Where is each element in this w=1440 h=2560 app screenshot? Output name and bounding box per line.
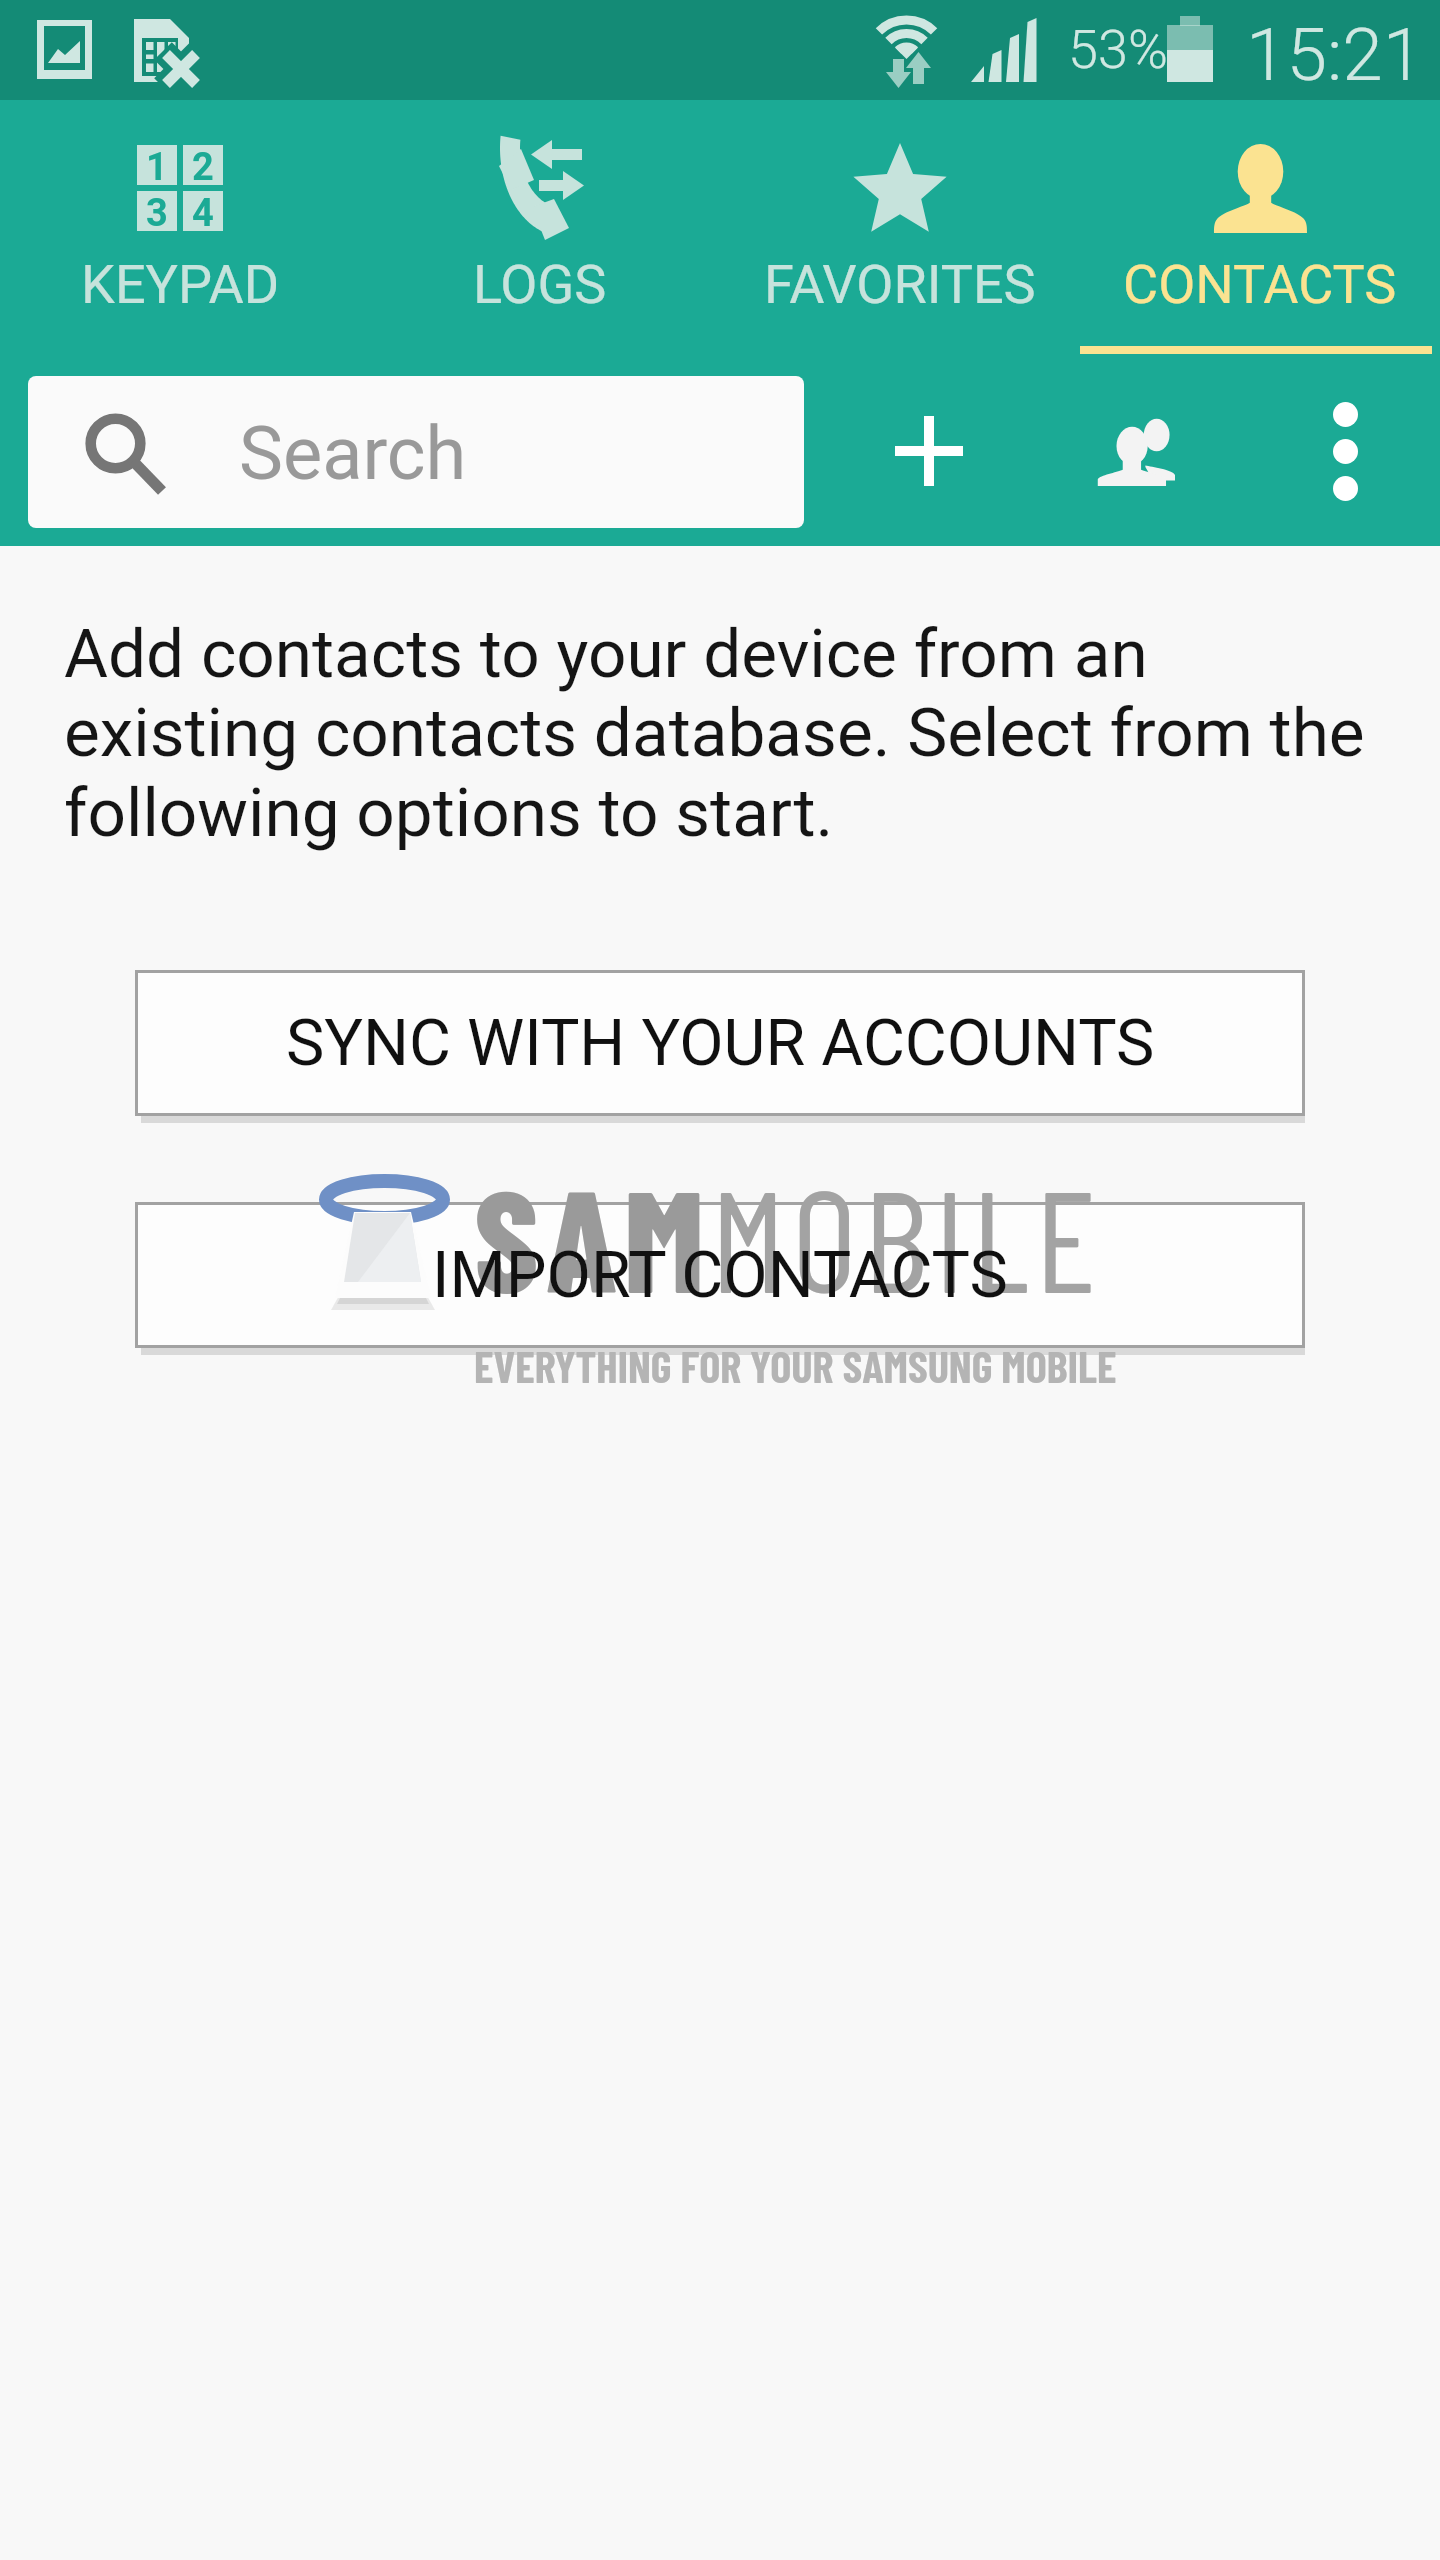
button[interactable]: IMPORT CONTACTS (135, 1202, 1305, 1348)
button[interactable]: SYNC WITH YOUR ACCOUNTS (135, 970, 1305, 1116)
staticText: KEYPAD (81, 253, 280, 316)
button[interactable]: Groups (1097, 418, 1175, 486)
staticText: Add contacts to your device from an exis… (64, 614, 1394, 853)
button[interactable]: Add contact (859, 381, 999, 521)
staticText: CONTACTS (1123, 253, 1397, 316)
staticText: SYNC WITH YOUR ACCOUNTS (286, 1005, 1155, 1081)
button[interactable]: CONTACTS (1080, 100, 1440, 354)
staticText: FAVORITES (764, 253, 1036, 316)
staticText: SAM (474, 1151, 711, 1321)
staticText: EVERYTHING FOR YOUR SAMSUNG MOBILE (474, 1338, 1117, 1391)
button[interactable]: FAVORITES (720, 100, 1080, 354)
staticText: LOGS (473, 253, 607, 316)
button[interactable]: More options (1275, 381, 1415, 521)
staticText: 53% (1068, 18, 1168, 81)
button[interactable]: LOGS (360, 100, 720, 354)
staticText: 3 (146, 191, 168, 231)
staticText: IMPORT CONTACTS (432, 1237, 1008, 1313)
staticText: MOBILE (711, 1151, 1104, 1321)
staticText: Search (239, 410, 467, 497)
staticText: 2 (192, 145, 214, 185)
button[interactable]: Search contacts (28, 376, 804, 528)
staticText: 1 (146, 145, 168, 185)
button[interactable]: 1 (0, 100, 360, 354)
button[interactable] (135, 1202, 1305, 1348)
staticText: 4 (192, 191, 214, 231)
staticText: 15:21 (1246, 12, 1424, 98)
